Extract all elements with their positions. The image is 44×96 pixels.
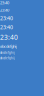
- staticText: 23:40: [0, 0, 9, 5]
- staticText: abcdefghij: [0, 44, 17, 49]
- staticText: abcdefghij: [0, 56, 15, 60]
- staticText: abcdefghij: [0, 51, 15, 54]
- staticText: 23:40: [0, 33, 18, 42]
- staticText: 23:40: [0, 7, 9, 13]
- staticText: 23:40: [0, 15, 13, 22]
- staticText: 23:40: [0, 24, 13, 31]
